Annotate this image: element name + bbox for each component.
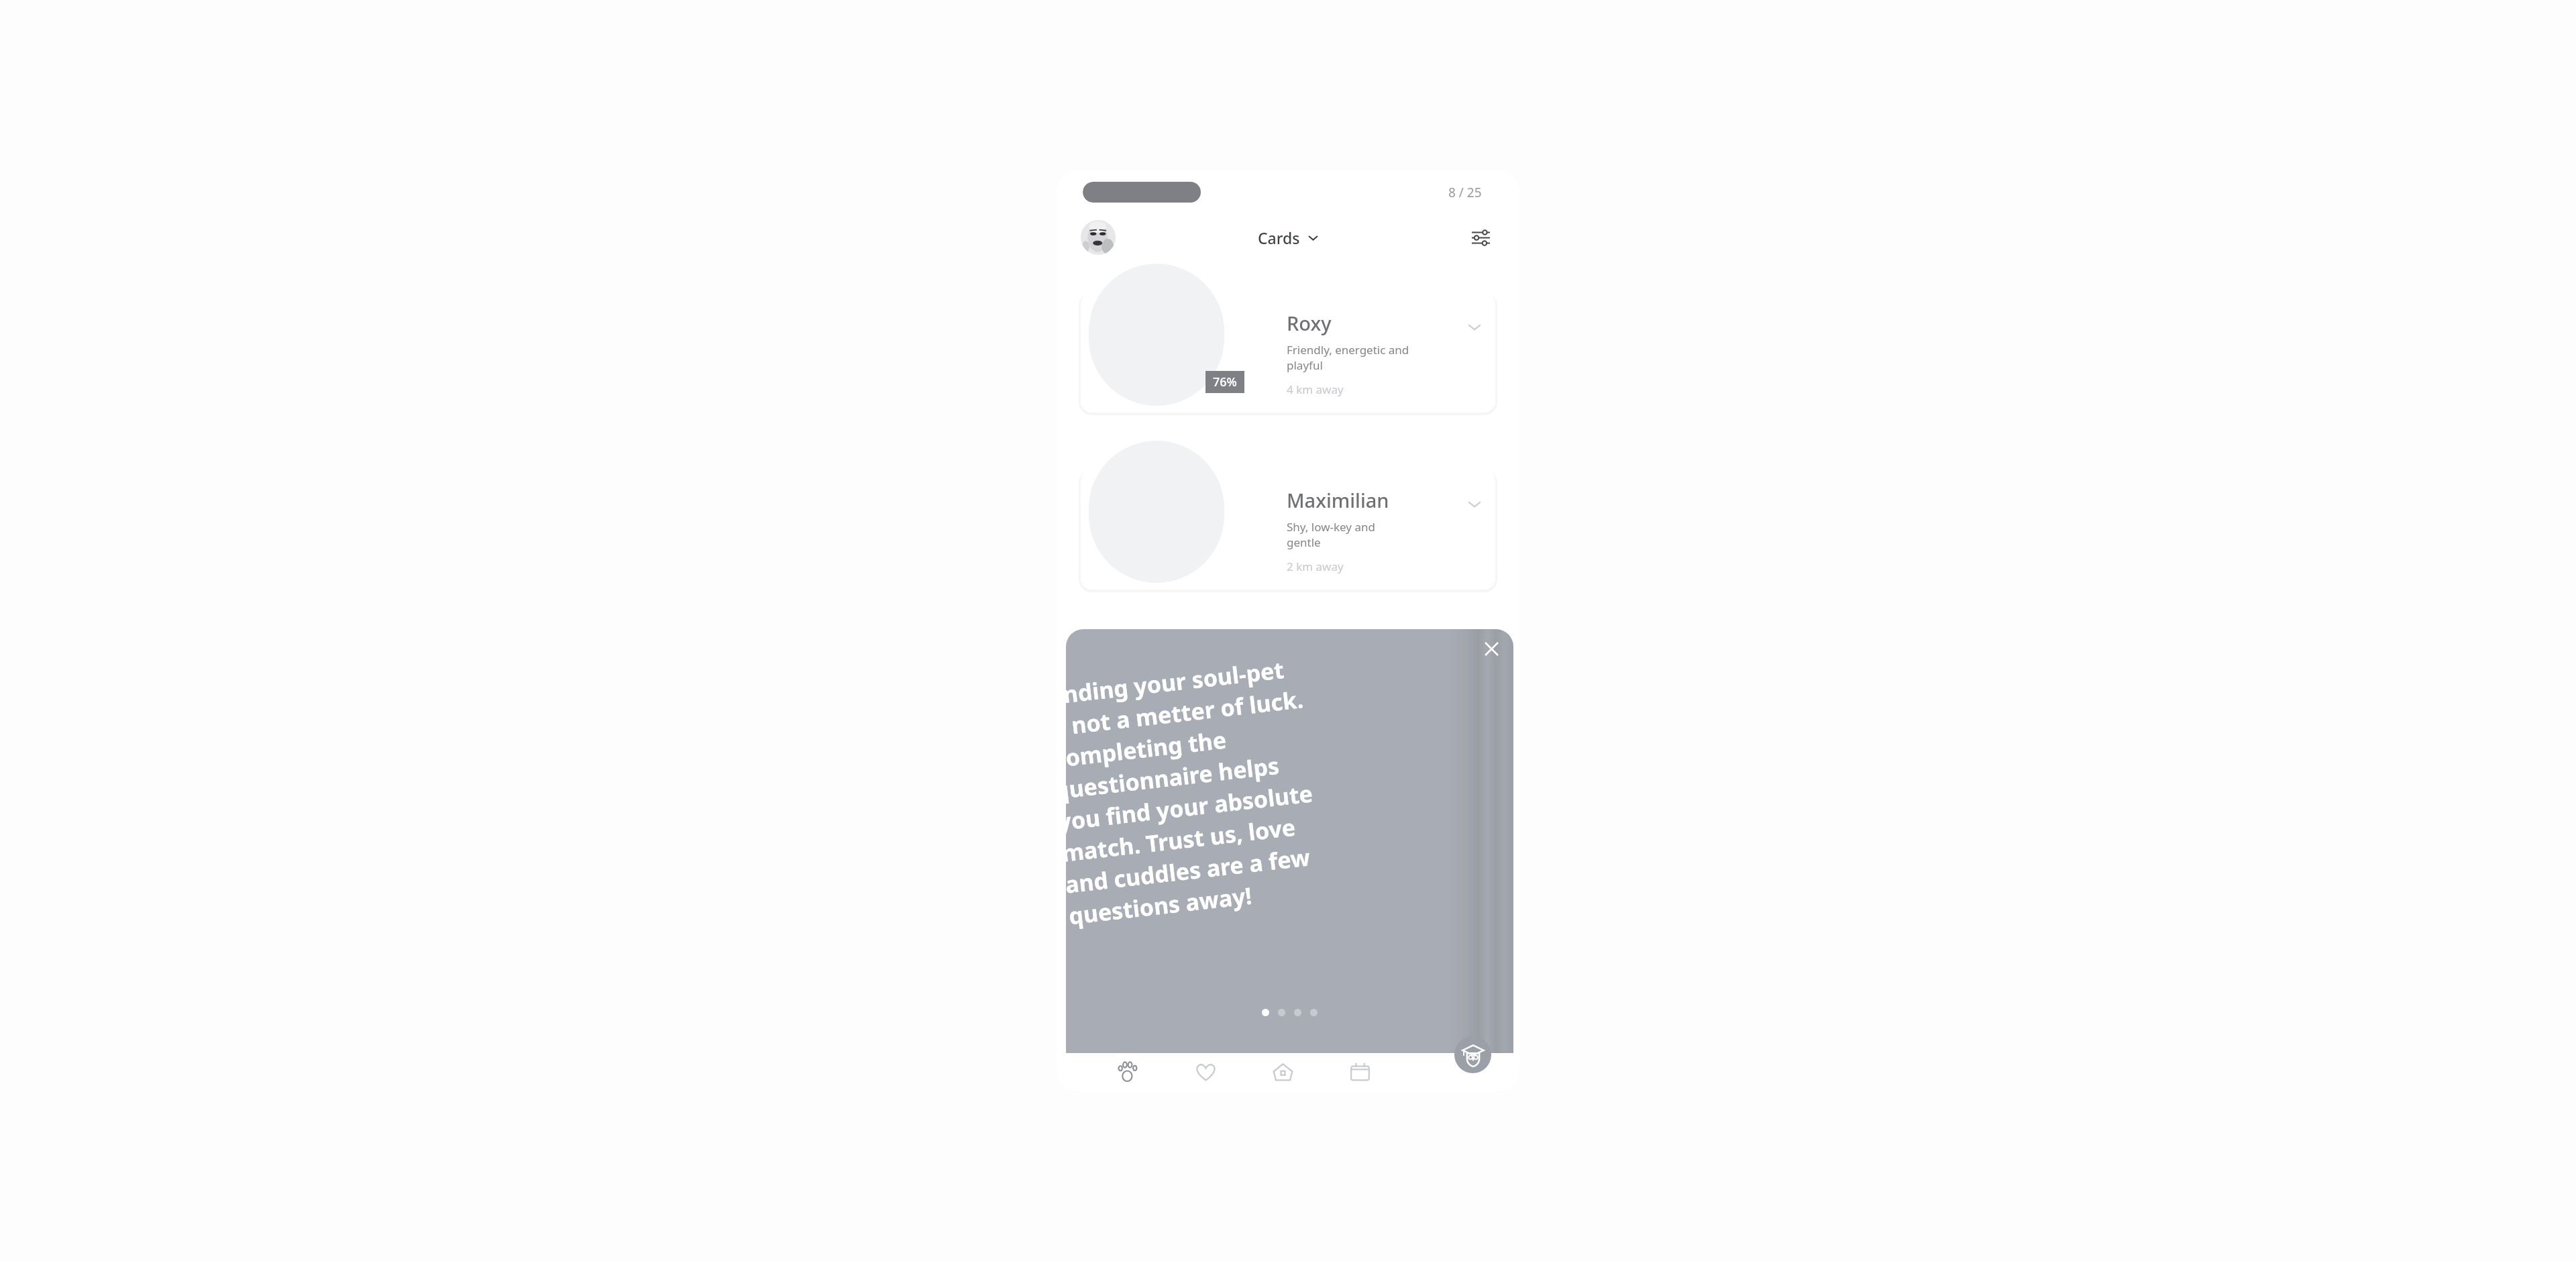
button[interactable] (1081, 292, 1495, 413)
button[interactable]: 8 / 25 (1083, 182, 1493, 203)
button[interactable] (1081, 470, 1495, 590)
staticText: Maximilian (1287, 487, 1389, 513)
button[interactable]: Calendar (1322, 1053, 1399, 1091)
button[interactable]: Filters (1466, 223, 1495, 252)
staticText: 4 km away (1287, 382, 1344, 397)
staticText: 2 km away (1287, 559, 1344, 574)
staticText: Shy, low-key and gentle (1287, 519, 1375, 550)
button[interactable] (1294, 1009, 1301, 1016)
button[interactable]: Pets (1090, 1053, 1167, 1091)
button[interactable]: Close (1477, 634, 1506, 663)
button[interactable]: Close (1066, 629, 1513, 1053)
staticText: 76% (1213, 374, 1237, 390)
staticText: Cards (1258, 227, 1300, 248)
button[interactable] (1310, 1009, 1318, 1016)
staticText: Roxy (1287, 310, 1332, 336)
button[interactable]: Questionnaire (1454, 1036, 1491, 1073)
button[interactable]: Profile (1081, 220, 1116, 255)
button[interactable]: Favourites (1167, 1053, 1244, 1091)
button[interactable] (1262, 1009, 1269, 1016)
button[interactable]: Home (1244, 1053, 1322, 1091)
button[interactable] (1278, 1009, 1285, 1016)
button[interactable]: Expand Maximilian (1463, 492, 1486, 515)
staticText: Finding your soul-pet is not a metter of… (1066, 652, 1327, 931)
staticText: 8 / 25 (1448, 184, 1482, 201)
button[interactable]: Expand Roxy (1463, 315, 1486, 338)
staticText: Friendly, energetic and playful (1287, 342, 1409, 373)
button[interactable]: Cards (1251, 224, 1326, 252)
